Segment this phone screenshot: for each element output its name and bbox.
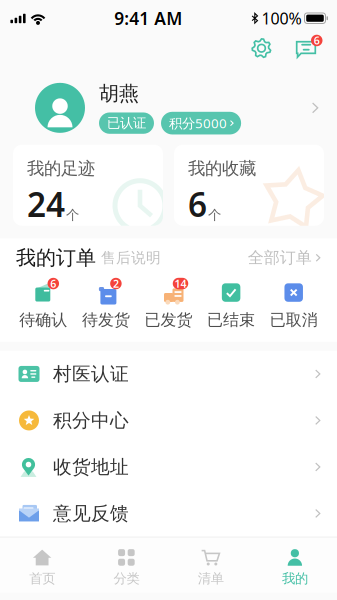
staticText: 我的足迹 bbox=[27, 158, 95, 179]
staticText: 待确认 bbox=[19, 310, 67, 330]
staticText: 个 bbox=[66, 207, 79, 223]
staticText: 胡燕 bbox=[99, 81, 139, 106]
staticText: 村医认证 bbox=[53, 362, 129, 385]
button[interactable]: 我的足迹 bbox=[13, 146, 163, 227]
staticText: 9:41 AM bbox=[114, 7, 182, 30]
button[interactable]: 2 bbox=[75, 282, 137, 330]
staticText: 积分中心 bbox=[53, 409, 129, 432]
staticText: 24 bbox=[27, 182, 65, 226]
staticText: 6 bbox=[314, 33, 320, 48]
staticText: 已结束 bbox=[207, 310, 255, 330]
staticText: 个 bbox=[208, 207, 221, 223]
button[interactable]: Settings bbox=[248, 35, 275, 62]
staticText: 全部订单 bbox=[248, 248, 312, 268]
staticText: 意见反馈 bbox=[53, 502, 129, 525]
button[interactable]: 村医认证 bbox=[0, 351, 337, 397]
staticText: 6 bbox=[50, 276, 56, 291]
button[interactable]: 6 bbox=[12, 282, 75, 330]
staticText: 100% bbox=[261, 8, 301, 29]
button[interactable]: 分类 bbox=[84, 537, 168, 593]
staticText: 清单 bbox=[198, 570, 224, 587]
staticText: 收货地址 bbox=[53, 455, 129, 478]
staticText: 已发货 bbox=[144, 310, 192, 330]
button[interactable]: Messages bbox=[291, 34, 321, 62]
button[interactable]: 14 bbox=[137, 282, 200, 330]
button[interactable]: 胡燕 bbox=[0, 62, 337, 146]
staticText: 我的收藏 bbox=[188, 158, 256, 179]
button[interactable]: 积分中心 bbox=[0, 397, 337, 444]
staticText: 6 bbox=[188, 182, 207, 226]
staticText: 我的订单 bbox=[16, 245, 96, 270]
staticText: 已取消 bbox=[270, 310, 318, 330]
staticText: 14 bbox=[174, 276, 186, 291]
staticText: 分类 bbox=[113, 570, 139, 587]
button[interactable]: 清单 bbox=[168, 537, 253, 593]
staticText: 售后说明 bbox=[101, 249, 161, 267]
staticText: 2 bbox=[113, 276, 119, 291]
button[interactable]: 全部订单 bbox=[248, 248, 321, 268]
button[interactable]: 已取消 bbox=[262, 282, 325, 330]
button[interactable]: 首页 bbox=[0, 537, 84, 593]
button[interactable]: 我的 bbox=[253, 537, 337, 593]
staticText: 积分5000 bbox=[169, 114, 227, 132]
button[interactable]: 已结束 bbox=[200, 282, 262, 330]
button[interactable]: 我的收藏 bbox=[174, 146, 324, 227]
staticText: 已认证 bbox=[107, 115, 146, 131]
button[interactable]: 收货地址 bbox=[0, 444, 337, 490]
button[interactable]: 意见反馈 bbox=[0, 490, 337, 537]
staticText: 首页 bbox=[29, 570, 55, 587]
staticText: 待发货 bbox=[82, 310, 130, 330]
staticText: 我的 bbox=[282, 570, 308, 587]
